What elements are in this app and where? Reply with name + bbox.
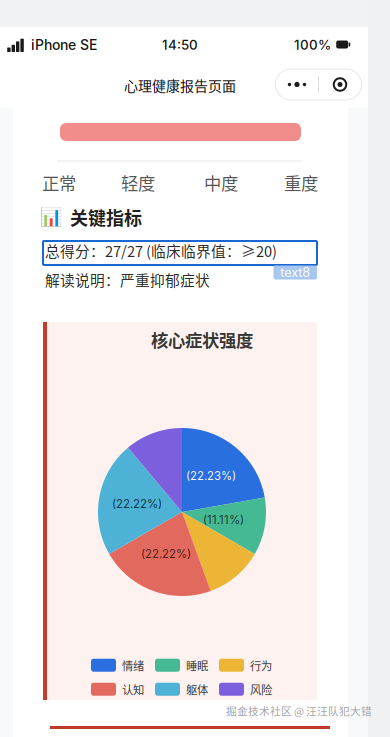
- staticText: 中度: [204, 170, 238, 195]
- staticText: (11.11%): [203, 513, 244, 527]
- staticText: 掘金技术社区 @ 汪汪队犯大错: [226, 703, 372, 718]
- staticText: 总得分：27/27 (临床临界值：≥20): [45, 240, 277, 261]
- staticText: 躯体: [186, 681, 208, 697]
- staticText: 风险: [250, 681, 272, 697]
- staticText: 睡眠: [186, 657, 208, 673]
- staticText: 14:50: [162, 37, 198, 53]
- staticText: 核心症状强度: [151, 327, 253, 352]
- staticText: (22.23%): [186, 469, 236, 483]
- staticText: iPhone SE: [31, 36, 97, 53]
- staticText: (22.22%): [141, 547, 191, 561]
- staticText: 心理健康报告页面: [124, 75, 236, 95]
- staticText: 情绪: [122, 657, 144, 673]
- staticText: 关键指标: [70, 204, 142, 230]
- staticText: 重度: [284, 170, 318, 195]
- staticText: 📊: [40, 206, 62, 228]
- staticText: text8: [280, 265, 310, 280]
- staticText: 100%: [294, 37, 331, 53]
- staticText: 行为: [250, 657, 272, 673]
- staticText: 认知: [122, 681, 144, 697]
- staticText: 解读说明：严重抑郁症状: [45, 269, 210, 290]
- staticText: (22.22%): [112, 497, 162, 511]
- staticText: 正常: [42, 170, 76, 195]
- button[interactable]: 小程序菜单: [275, 69, 361, 100]
- staticText: 轻度: [121, 170, 155, 195]
